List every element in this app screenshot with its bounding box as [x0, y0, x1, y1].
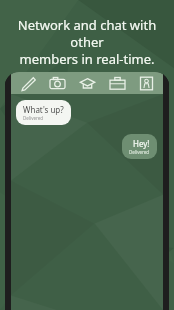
staticText: Delivered: [23, 115, 44, 121]
button[interactable]: Jobs: [104, 72, 130, 94]
staticText: What's up?: [23, 104, 64, 115]
button[interactable]: Hey!: [122, 134, 157, 159]
staticText: Hey!: [133, 138, 150, 149]
button[interactable]: What's up?: [16, 100, 71, 125]
button[interactable]: Profile: [133, 72, 159, 94]
staticText: Network and chat with other members in r…: [6, 16, 168, 68]
button[interactable]: Education: [74, 72, 100, 94]
button[interactable]: Camera: [44, 72, 70, 94]
button[interactable]: Compose: [15, 72, 41, 94]
staticText: Delivered: [129, 149, 150, 155]
